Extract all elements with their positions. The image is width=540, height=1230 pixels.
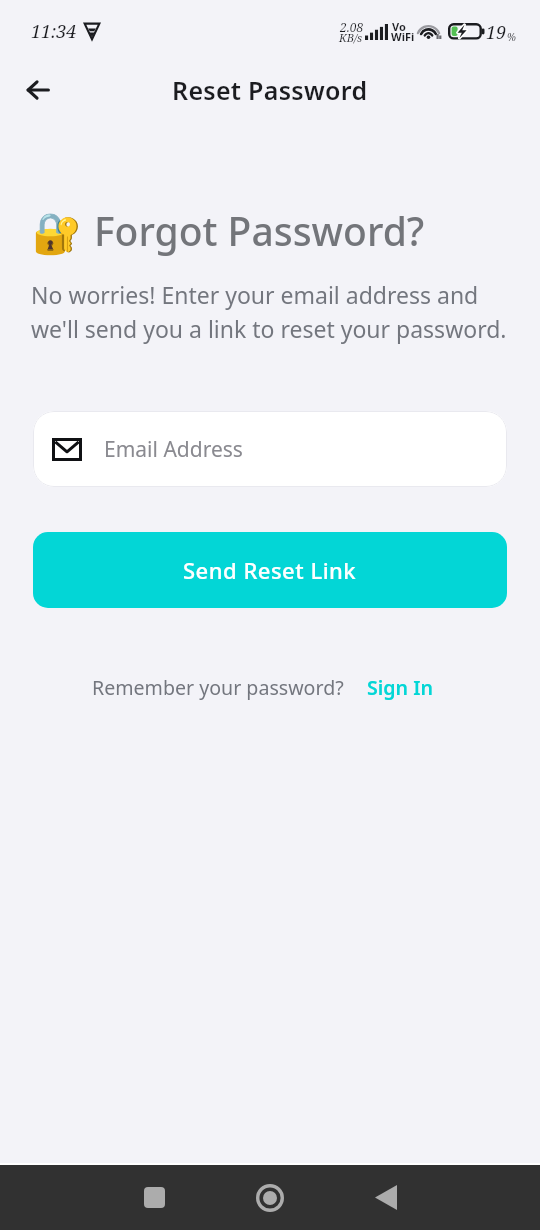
staticText: Forgot Password? <box>94 204 425 257</box>
staticText: Email Address <box>104 435 243 464</box>
staticText: Remember your password? <box>92 674 344 701</box>
button[interactable]: Send Reset Link <box>33 532 507 608</box>
button[interactable]: Recent apps <box>126 1165 182 1230</box>
button[interactable]: Back <box>358 1165 414 1230</box>
staticText: WiFi <box>391 29 415 44</box>
staticText: Send Reset Link <box>183 555 357 585</box>
staticText: 2.08 <box>340 19 364 35</box>
staticText: 🔐 <box>32 210 82 257</box>
staticText: Vo <box>392 19 406 34</box>
button[interactable]: Email Address <box>33 411 507 487</box>
staticText: 19 <box>486 20 507 45</box>
staticText: No worries! Enter your email address and… <box>31 279 514 345</box>
button[interactable]: Back <box>14 66 62 114</box>
staticText: Reset Password <box>172 73 368 107</box>
staticText: 11:34 <box>31 19 77 44</box>
button[interactable]: Home <box>242 1165 298 1230</box>
button[interactable]: Sign In <box>363 672 437 703</box>
staticText: % <box>507 30 516 44</box>
staticText: KB/s <box>339 30 363 45</box>
staticText: Sign In <box>367 674 433 701</box>
